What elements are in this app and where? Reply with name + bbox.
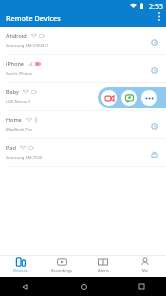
button[interactable]: Devices	[0, 256, 41, 277]
button[interactable]: Device actions	[147, 35, 161, 49]
staticText: Sam's iPhone	[6, 71, 33, 77]
button[interactable]: iPhone	[0, 55, 166, 83]
staticText: Alerts	[98, 268, 109, 273]
button[interactable]: More actions	[141, 90, 157, 106]
staticText: Devices	[13, 268, 28, 273]
staticText: Android	[6, 32, 27, 39]
button[interactable]: Baby	[0, 83, 166, 111]
staticText: Samsung SM-G960U1	[6, 43, 49, 49]
button[interactable]: Video call	[101, 90, 117, 106]
staticText: LGE Nexus 5	[6, 99, 31, 105]
staticText: Baby	[6, 88, 19, 95]
button[interactable]: Audio call	[121, 90, 137, 106]
button[interactable]: More options	[152, 10, 165, 23]
button[interactable]: Alerts	[82, 256, 124, 277]
staticText: Samsung SM-T500	[6, 155, 43, 161]
button[interactable]: Device actions	[147, 119, 161, 133]
staticText: iPhone	[6, 60, 24, 67]
button[interactable]: Device actions	[147, 63, 161, 77]
staticText: 2:55	[149, 2, 163, 12]
staticText: Home	[6, 116, 22, 123]
staticText: Recordings	[51, 268, 72, 273]
button[interactable]: Device actions	[147, 91, 161, 105]
button[interactable]: Device actions	[147, 147, 161, 161]
button[interactable]: Me	[124, 256, 166, 277]
button[interactable]: Home	[0, 111, 166, 139]
staticText: Remote Devices	[6, 13, 61, 23]
button[interactable]: Android	[0, 27, 166, 55]
staticText: Pad	[6, 144, 16, 151]
staticText: Me	[142, 268, 148, 273]
button[interactable]: Recordings	[41, 256, 82, 277]
button[interactable]: Pad	[0, 139, 166, 167]
staticText: MacBook Pro	[6, 127, 32, 133]
